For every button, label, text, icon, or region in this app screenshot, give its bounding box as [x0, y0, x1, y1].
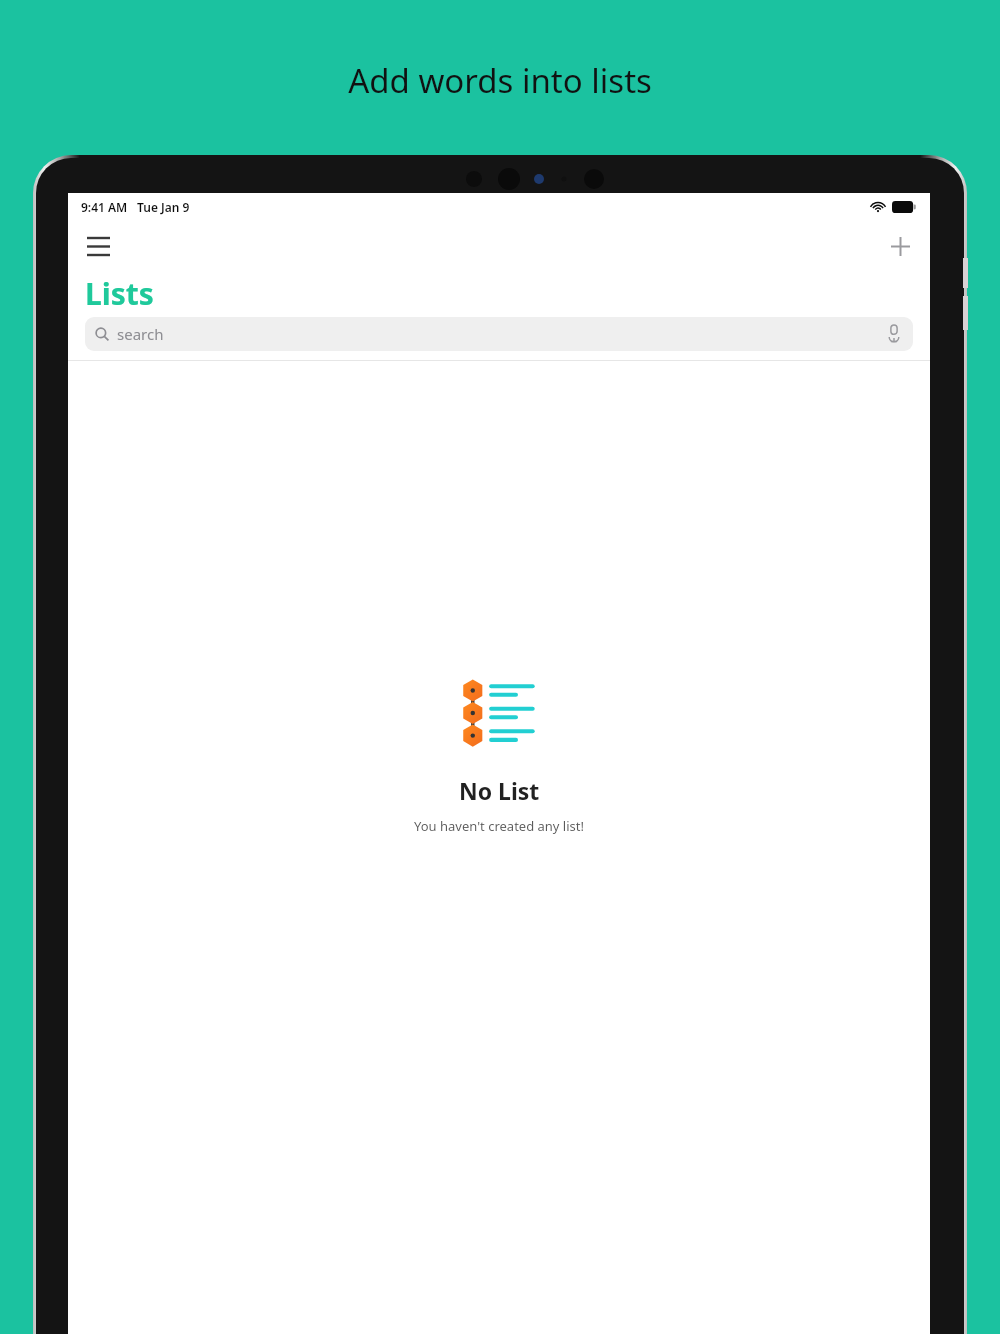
staticText: Add words into lists — [0, 58, 1000, 103]
staticText: No List — [459, 775, 540, 806]
button[interactable]: Voice search — [883, 323, 905, 345]
staticText: search — [117, 324, 164, 344]
button[interactable]: search — [85, 317, 913, 351]
staticText: 9:41 AM — [81, 199, 128, 215]
staticText: You haven't created any list! — [414, 817, 584, 835]
button[interactable]: Menu — [76, 224, 120, 268]
staticText: Tue Jan 9 — [137, 199, 190, 215]
button[interactable]: Add list — [878, 224, 922, 268]
staticText: Lists — [85, 273, 154, 314]
